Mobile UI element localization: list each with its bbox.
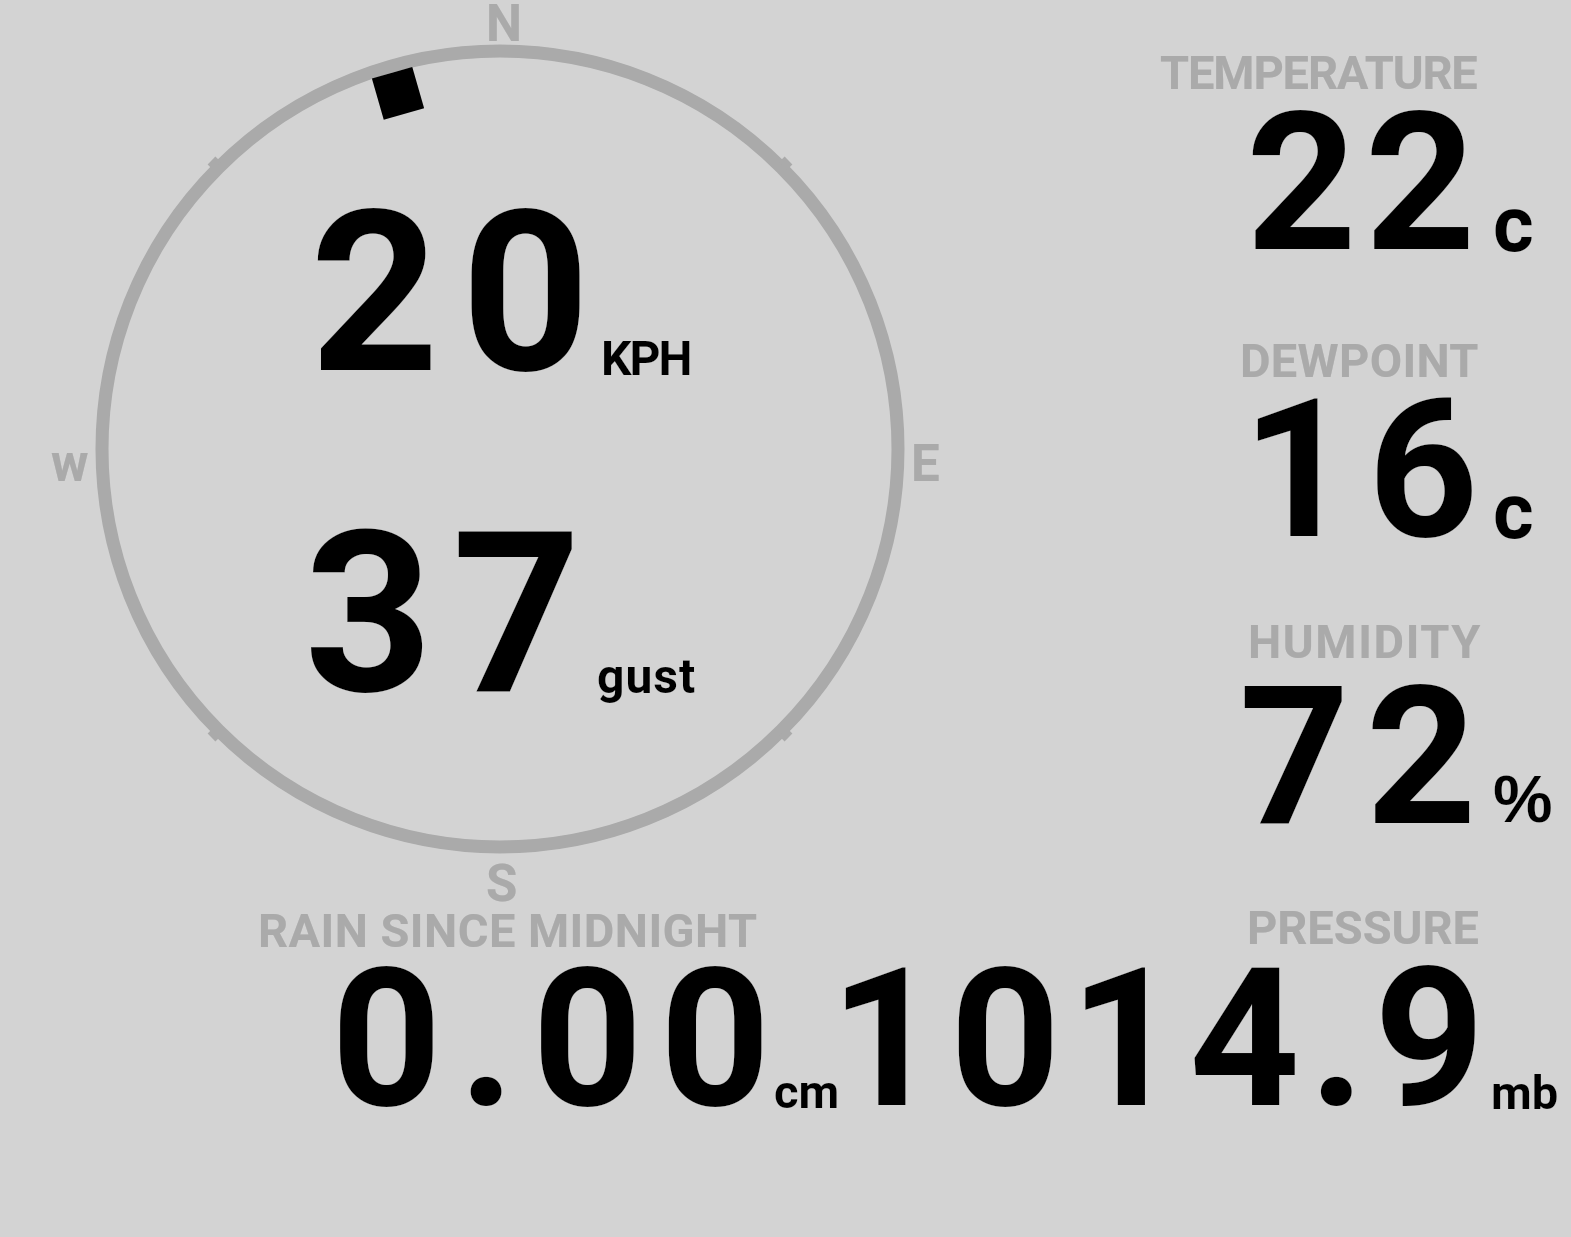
staticText: w bbox=[51, 434, 89, 494]
button[interactable]: DEWPOINT 16 c bbox=[1120, 336, 1571, 551]
staticText: KPH bbox=[601, 330, 691, 386]
staticText: 72 bbox=[1239, 644, 1493, 859]
staticText: 1014.9 bbox=[830, 926, 1494, 1141]
button[interactable]: PRESSURE 1014.9 mb bbox=[850, 900, 1571, 1115]
button[interactable]: HUMIDITY 72 % bbox=[1120, 617, 1571, 832]
staticText: TEMPERATURE bbox=[1160, 45, 1477, 100]
staticText: E bbox=[911, 434, 940, 494]
staticText: 22 bbox=[1246, 70, 1484, 285]
staticText: RAIN SINCE MIDNIGHT bbox=[258, 903, 758, 958]
staticText: c bbox=[1493, 466, 1534, 557]
staticText: 0.00 bbox=[331, 926, 788, 1141]
staticText: 20 bbox=[310, 161, 613, 386]
staticText: % bbox=[1493, 761, 1553, 836]
button[interactable]: Wind speed 20 KPH bbox=[300, 170, 710, 395]
staticText: mb bbox=[1491, 1065, 1559, 1120]
staticText: DEWPOINT bbox=[1240, 333, 1479, 388]
button[interactable]: Wind gust 37 KPH bbox=[300, 490, 710, 715]
button[interactable]: RAIN SINCE MIDNIGHT 0.00 cm bbox=[250, 903, 850, 1118]
staticText: cm bbox=[774, 1064, 840, 1119]
staticText: 16 bbox=[1242, 357, 1494, 572]
staticText: PRESSURE bbox=[1247, 900, 1479, 955]
staticText: S bbox=[486, 854, 518, 914]
staticText: c bbox=[1493, 179, 1534, 270]
button[interactable]: TEMPERATURE 22 c bbox=[1120, 48, 1571, 263]
button[interactable]: Wind direction, north north-west bbox=[88, 37, 912, 861]
staticText: N bbox=[486, 0, 523, 54]
staticText: 37 bbox=[304, 482, 601, 707]
staticText: HUMIDITY bbox=[1248, 614, 1483, 669]
staticText: gust bbox=[597, 648, 697, 704]
